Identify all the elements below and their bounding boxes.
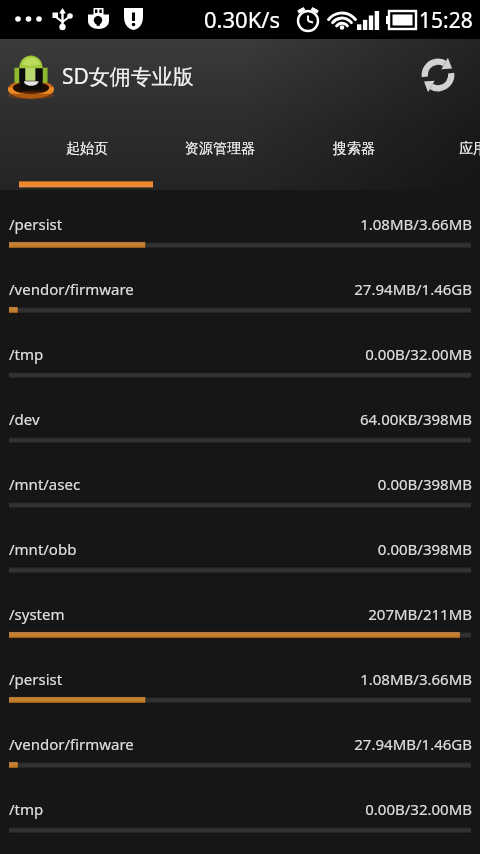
staticText: /system — [9, 604, 65, 624]
button[interactable]: /vendor/firmware — [0, 710, 480, 775]
staticText: 0.30K/s — [204, 4, 280, 34]
staticText: /mnt/obb — [9, 539, 77, 559]
staticText: /mnt/asec — [9, 474, 81, 494]
button[interactable]: /persist — [0, 190, 480, 255]
staticText: 0.00B/32.00MB — [365, 799, 472, 819]
button[interactable]: /system — [0, 580, 480, 645]
staticText: 起始页 — [66, 140, 108, 158]
staticText: 0.00B/32.00MB — [365, 344, 472, 364]
button[interactable]: /tmp — [0, 320, 480, 385]
staticText: 搜索器 — [333, 140, 375, 158]
staticText: 27.94MB/1.46GB — [354, 734, 472, 754]
staticText: /vendor/firmware — [9, 279, 134, 299]
staticText: /persist — [9, 669, 63, 689]
other: App icon — [8, 50, 54, 100]
staticText: /persist — [9, 214, 63, 234]
staticText: 0.00B/398MB — [377, 474, 472, 494]
button[interactable]: 起始页 — [20, 118, 153, 190]
button[interactable]: /mnt/asec — [0, 450, 480, 515]
staticText: /dev — [9, 409, 40, 429]
staticText: /tmp — [9, 344, 44, 364]
staticText: 64.00KB/398MB — [359, 409, 472, 429]
button[interactable]: /dev — [0, 385, 480, 450]
button[interactable]: 资源管理器 — [153, 118, 286, 190]
staticText: /tmp — [9, 799, 44, 819]
button[interactable]: /tmp — [0, 775, 480, 840]
staticText: 应用控制 — [459, 140, 480, 158]
staticText: 1.08MB/3.66MB — [360, 669, 472, 689]
button[interactable]: Refresh — [418, 55, 458, 95]
staticText: 207MB/211MB — [368, 604, 472, 624]
button[interactable]: 搜索器 — [287, 118, 420, 190]
staticText: 资源管理器 — [185, 140, 255, 158]
button[interactable]: /mnt/obb — [0, 515, 480, 580]
staticText: 1.08MB/3.66MB — [360, 214, 472, 234]
staticText: 27.94MB/1.46GB — [354, 279, 472, 299]
staticText: SD女佣专业版 — [62, 62, 194, 91]
staticText: 0.00B/398MB — [377, 539, 472, 559]
staticText: /vendor/firmware — [9, 734, 134, 754]
button[interactable]: /vendor/firmware — [0, 255, 480, 320]
staticText: 15:28 — [419, 6, 473, 35]
button[interactable]: /persist — [0, 645, 480, 710]
button[interactable]: 应用控制 — [420, 118, 480, 190]
